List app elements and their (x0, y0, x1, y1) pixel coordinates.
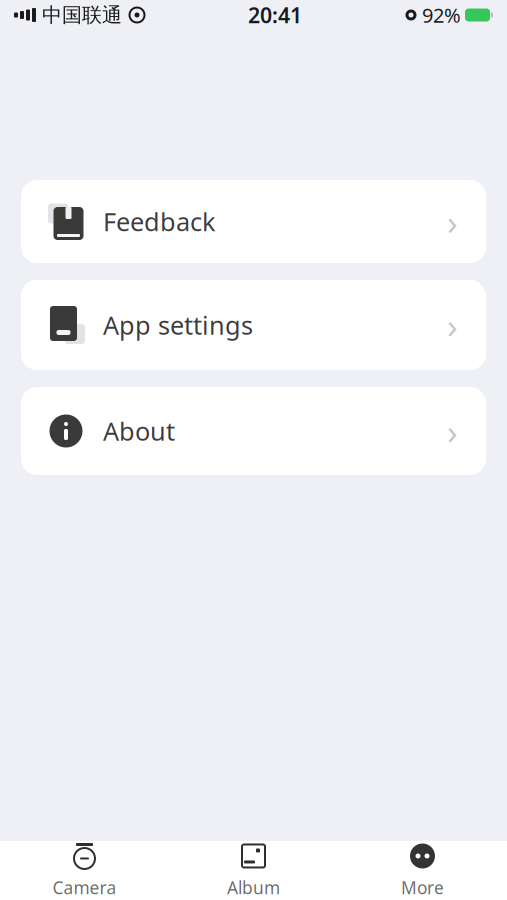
staticText: 中国联通 (42, 3, 122, 27)
staticText: App settings (103, 308, 253, 342)
button[interactable]: Feedback (21, 180, 486, 263)
staticText: 92% (422, 2, 461, 28)
button[interactable]: App settings (21, 280, 486, 370)
staticText: More (401, 876, 444, 899)
staticText: Camera (52, 876, 116, 899)
staticText: › (447, 302, 458, 348)
staticText: › (447, 408, 458, 454)
staticText: › (447, 198, 458, 244)
staticText: Album (227, 876, 280, 899)
staticText: About (103, 414, 175, 448)
button[interactable]: Camera (0, 841, 169, 900)
button[interactable]: More (338, 841, 507, 900)
staticText: Feedback (103, 205, 216, 238)
button[interactable]: About (21, 387, 486, 475)
staticText: 20:41 (248, 1, 302, 29)
button[interactable]: Album (169, 841, 338, 900)
